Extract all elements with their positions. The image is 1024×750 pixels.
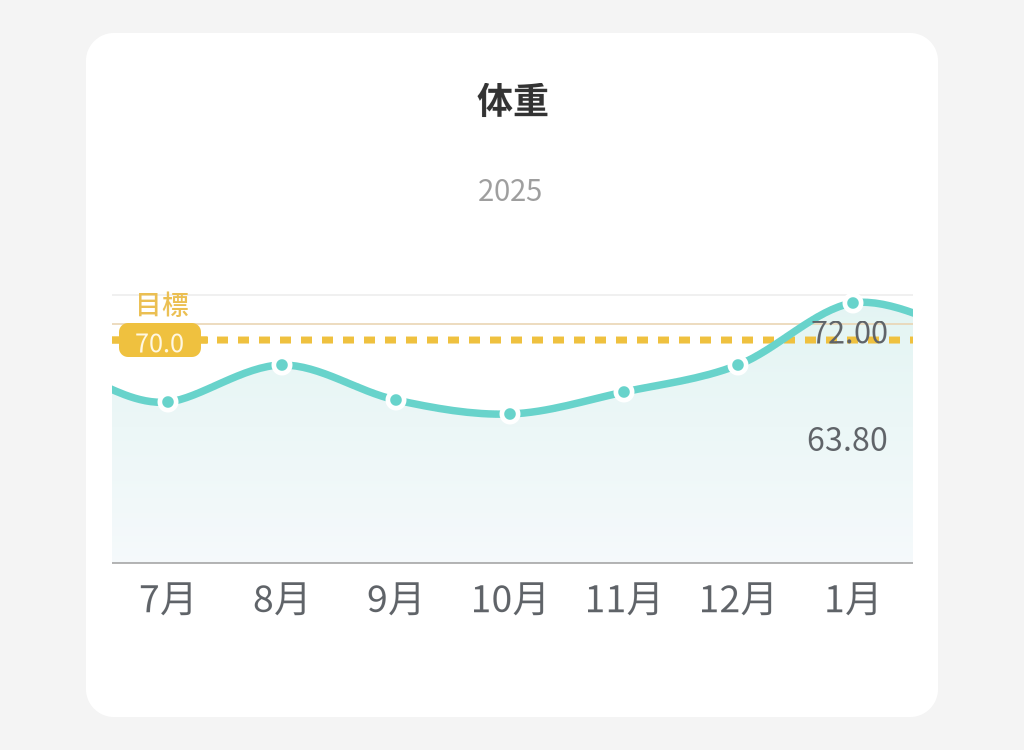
staticText: 72.00: [811, 308, 888, 352]
staticText: 9月: [367, 569, 425, 623]
staticText: 11月: [584, 569, 663, 623]
staticText: 10月: [470, 569, 549, 623]
staticText: 1月: [824, 569, 882, 623]
staticText: 70.0: [135, 323, 184, 360]
staticText: 2025: [478, 167, 542, 209]
staticText: 7月: [139, 569, 197, 623]
staticText: 体重: [477, 72, 549, 124]
button[interactable]: 体重: [86, 33, 938, 717]
staticText: 目標: [135, 283, 189, 322]
staticText: 8月: [253, 569, 311, 623]
staticText: 12月: [698, 569, 777, 623]
staticText: 63.80: [807, 414, 888, 460]
